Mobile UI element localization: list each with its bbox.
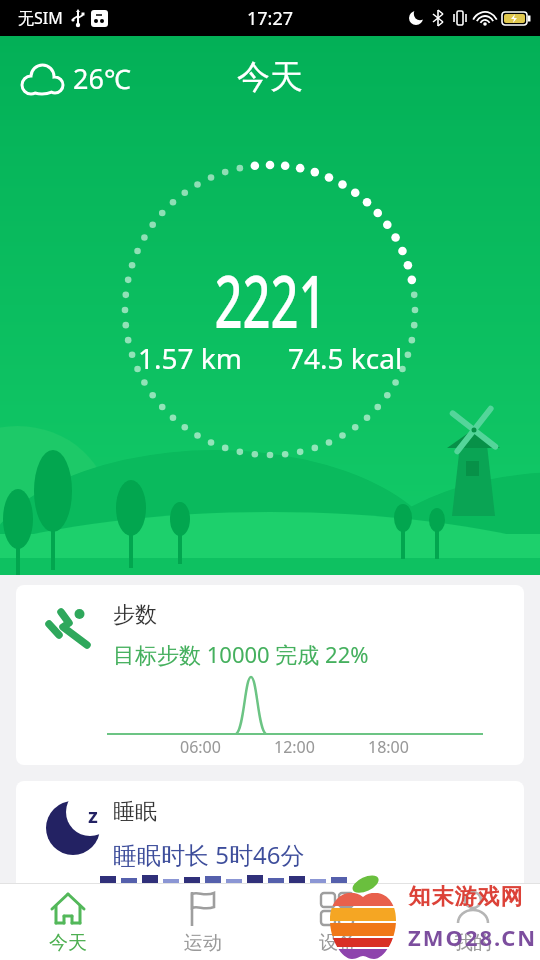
staticText: 运动 <box>184 931 222 955</box>
staticText: 06:00 <box>180 736 221 758</box>
staticText: 目标步数 10000 完成 22% <box>113 639 369 669</box>
button[interactable]: 运动 <box>135 884 270 960</box>
button[interactable]: z <box>16 781 524 951</box>
button[interactable]: 26℃ <box>22 60 131 97</box>
staticText: 74.5 kcal <box>288 339 403 377</box>
staticText: ZMO28.CN <box>408 922 538 952</box>
button[interactable]: 步数 <box>16 585 524 765</box>
staticText: 我的 <box>454 931 492 955</box>
staticText: 步数 <box>113 601 157 629</box>
staticText: 今天 <box>237 56 303 98</box>
staticText: 设备 <box>319 931 357 955</box>
button[interactable]: 设备 <box>270 884 405 960</box>
button[interactable]: 我的 <box>405 884 540 960</box>
staticText: 睡眠时长 5时46分 <box>113 838 305 871</box>
staticText: 无SIM <box>18 7 63 29</box>
staticText: 1.57 km <box>138 339 242 377</box>
staticText: 今天 <box>49 931 87 955</box>
staticText: z <box>88 802 98 829</box>
staticText: 12:00 <box>274 736 315 758</box>
button[interactable]: 今天 <box>0 884 135 960</box>
staticText: 睡眠 <box>113 798 157 826</box>
staticText: 2221 <box>214 251 327 349</box>
staticText: 26℃ <box>73 60 131 97</box>
staticText: 17:27 <box>247 6 294 31</box>
staticText: 知末游戏网 <box>408 883 523 911</box>
staticText: 18:00 <box>368 736 409 758</box>
